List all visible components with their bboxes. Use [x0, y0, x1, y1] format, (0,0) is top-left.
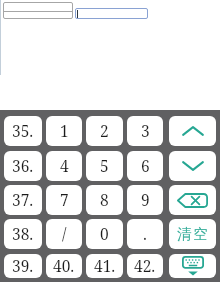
- staticText: 41.: [94, 255, 116, 276]
- button[interactable]: 6: [127, 151, 163, 181]
- staticText: 39.: [12, 255, 34, 276]
- staticText: 37.: [12, 189, 34, 210]
- button[interactable]: 39.: [4, 254, 42, 278]
- button[interactable]: 36.: [4, 151, 42, 181]
- button[interactable]: [169, 151, 216, 181]
- button[interactable]: [169, 116, 216, 146]
- button[interactable]: 42.: [127, 254, 163, 278]
- staticText: 35.: [12, 120, 34, 141]
- staticText: 3: [141, 120, 150, 141]
- button[interactable]: 0: [86, 219, 123, 249]
- button[interactable]: 清空: [169, 219, 216, 249]
- staticText: 清空: [176, 225, 209, 243]
- staticText: 40.: [53, 255, 75, 276]
- button[interactable]: [169, 254, 216, 278]
- staticText: 6: [141, 155, 150, 176]
- button[interactable]: 2: [86, 116, 123, 146]
- staticText: 9: [141, 189, 150, 210]
- staticText: 2: [100, 120, 109, 141]
- button[interactable]: [169, 185, 216, 215]
- button[interactable]: 7: [46, 185, 82, 215]
- staticText: .: [143, 223, 147, 244]
- button[interactable]: 35.: [4, 116, 42, 146]
- button[interactable]: 1: [46, 116, 82, 146]
- staticText: 8: [100, 189, 109, 210]
- staticText: 4: [60, 155, 69, 176]
- button[interactable]: 37.: [4, 185, 42, 215]
- button[interactable]: .: [127, 219, 163, 249]
- staticText: 42.: [134, 255, 156, 276]
- staticText: /: [62, 223, 67, 244]
- staticText: 1: [60, 120, 69, 141]
- staticText: 0: [100, 223, 109, 244]
- staticText: 38.: [12, 223, 34, 244]
- button[interactable]: 38.: [4, 219, 42, 249]
- staticText: 5: [100, 155, 109, 176]
- button[interactable]: [3, 2, 73, 19]
- button[interactable]: 4: [46, 151, 82, 181]
- button[interactable]: 3: [127, 116, 163, 146]
- staticText: 36.: [12, 155, 34, 176]
- button[interactable]: 8: [86, 185, 123, 215]
- staticText: 7: [60, 189, 69, 210]
- button[interactable]: 40.: [46, 254, 82, 278]
- button[interactable]: [75, 8, 148, 19]
- button[interactable]: 9: [127, 185, 163, 215]
- button[interactable]: 5: [86, 151, 123, 181]
- button[interactable]: /: [46, 219, 82, 249]
- button[interactable]: 41.: [86, 254, 123, 278]
